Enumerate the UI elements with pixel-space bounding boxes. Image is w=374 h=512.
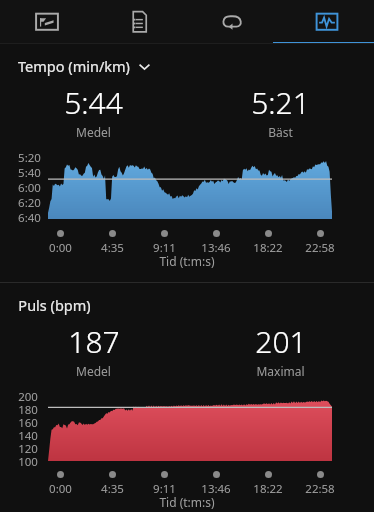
staticText: Puls (bpm) xyxy=(18,295,91,315)
staticText: Medel xyxy=(76,124,111,140)
staticText: 4:35 xyxy=(101,481,124,497)
button[interactable]: 5:44 xyxy=(0,82,187,140)
staticText: 0:00 xyxy=(49,481,72,497)
staticText: 200 xyxy=(18,389,38,402)
staticText: 140 xyxy=(18,428,38,441)
staticText: Tid (t:m:s) xyxy=(159,494,215,510)
button[interactable]: Map xyxy=(0,0,93,44)
staticText: 5:21 xyxy=(251,82,310,123)
staticText: 180 xyxy=(18,402,38,415)
button[interactable]: 187 xyxy=(0,321,187,379)
staticText: 22:58 xyxy=(305,240,335,256)
staticText: 18:22 xyxy=(253,481,283,497)
staticText: 6:40 xyxy=(18,210,41,225)
staticText: 9:11 xyxy=(153,240,176,256)
button[interactable]: Charts xyxy=(280,0,374,44)
button[interactable]: 5:21 xyxy=(187,82,374,140)
staticText: Medel xyxy=(76,363,111,379)
staticText: 22:58 xyxy=(305,481,335,497)
staticText: 18:22 xyxy=(253,240,283,256)
staticText: 4:35 xyxy=(101,240,124,256)
staticText: 0:00 xyxy=(49,240,72,256)
staticText: Tid (t:m:s) xyxy=(159,253,215,269)
staticText: Maximal xyxy=(256,363,305,379)
staticText: 100 xyxy=(18,454,38,467)
staticText: 5:20 xyxy=(18,150,41,165)
staticText: 201 xyxy=(255,321,307,362)
staticText: 187 xyxy=(68,321,120,362)
staticText: 9:11 xyxy=(153,481,176,497)
staticText: 6:20 xyxy=(18,195,41,210)
staticText: Bäst xyxy=(268,124,293,140)
staticText: Tempo (min/km) xyxy=(18,56,130,76)
staticText: 160 xyxy=(18,415,38,428)
button[interactable]: Laps xyxy=(186,0,280,44)
button[interactable]: Details xyxy=(93,0,186,44)
staticText: 5:40 xyxy=(18,165,41,180)
staticText: 13:46 xyxy=(201,481,231,497)
button[interactable]: Tempo (min/km) xyxy=(18,56,151,76)
button[interactable]: 201 xyxy=(187,321,374,379)
button[interactable]: Puls (bpm) xyxy=(18,295,91,315)
staticText: 5:44 xyxy=(64,82,123,123)
staticText: 13:46 xyxy=(201,240,231,256)
staticText: 120 xyxy=(18,441,38,454)
staticText: 6:00 xyxy=(18,180,41,195)
